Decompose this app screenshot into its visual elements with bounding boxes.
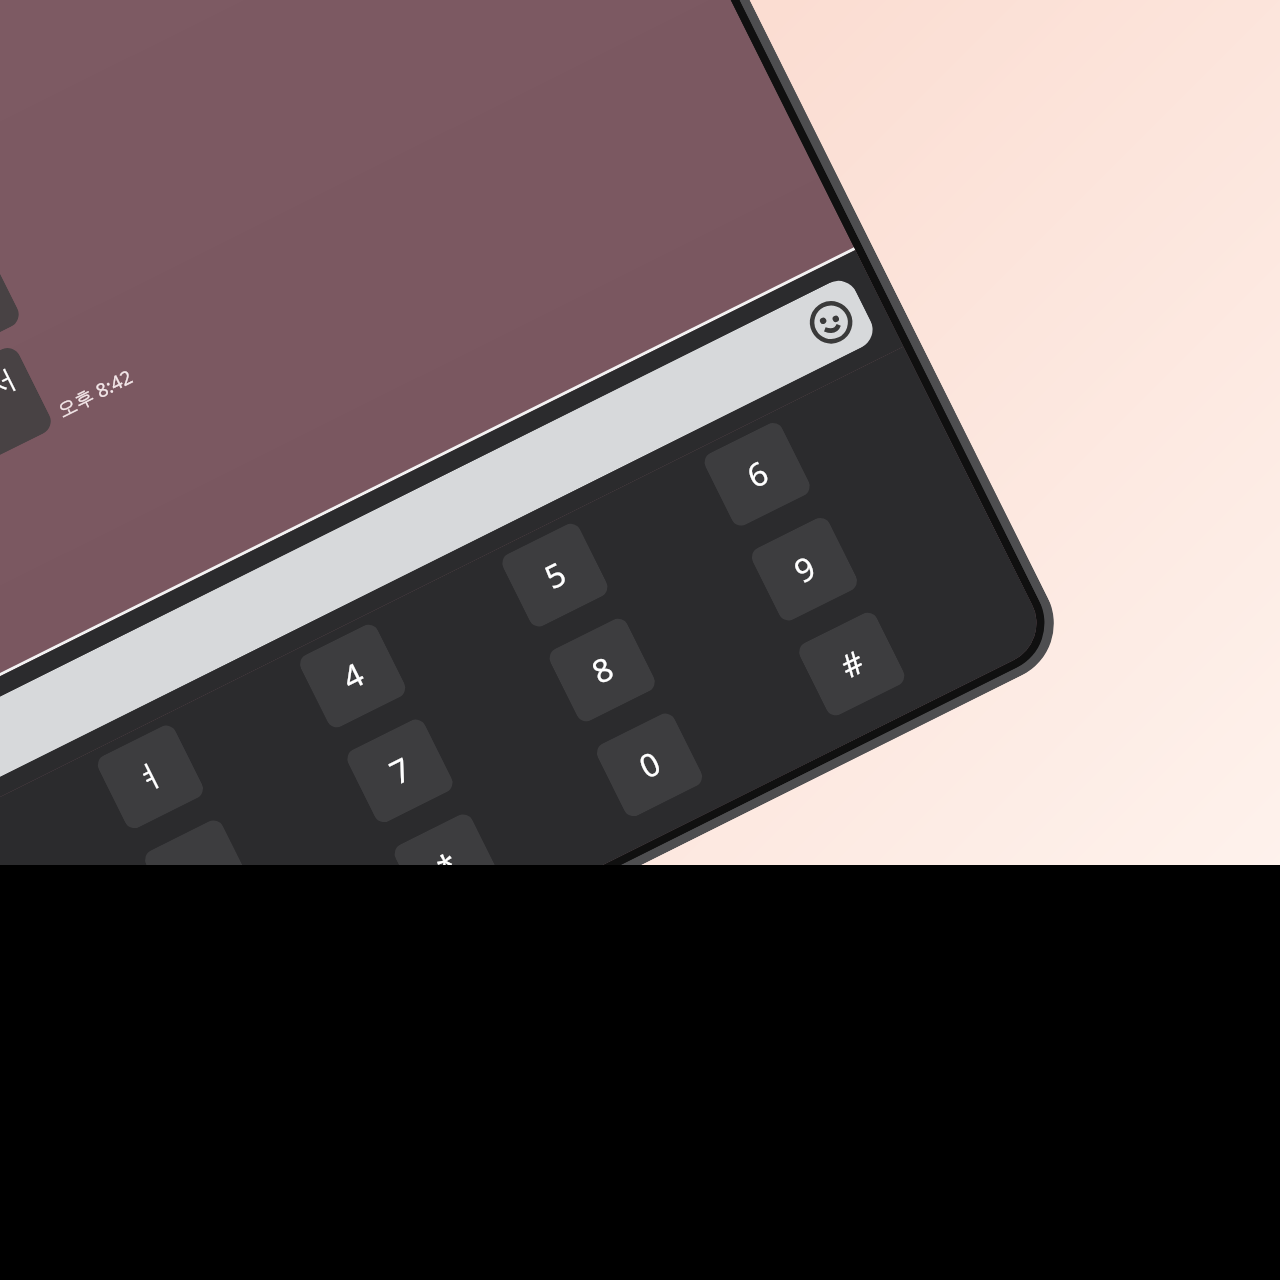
button[interactable]: 0 bbox=[593, 710, 706, 820]
button[interactable]: 4 bbox=[296, 621, 409, 731]
button[interactable]: ㅕ bbox=[94, 722, 207, 832]
button[interactable]: 6 bbox=[701, 419, 813, 529]
button[interactable]: 9 bbox=[748, 514, 861, 624]
staticText: 7 bbox=[382, 747, 419, 795]
button[interactable]: Emoji bbox=[0, 274, 879, 802]
button[interactable]: 5 bbox=[499, 520, 611, 630]
staticText: 4 bbox=[335, 652, 371, 700]
staticText: 도배우한테 미안해서 bbox=[0, 358, 22, 504]
staticText: 오후 8:42 bbox=[53, 363, 137, 423]
staticText: 8 bbox=[584, 646, 621, 694]
staticText: * bbox=[429, 842, 465, 889]
staticText: 0 bbox=[632, 741, 668, 789]
staticText: ㅜ bbox=[174, 847, 221, 897]
staticText: 6 bbox=[739, 450, 776, 498]
button[interactable]: ㅑ bbox=[0, 823, 4, 933]
button[interactable]: 도배우 촬영 중 다친 bbox=[0, 170, 23, 439]
staticText: 9 bbox=[787, 545, 823, 593]
button[interactable]: ㅜ bbox=[141, 817, 254, 927]
staticText: # bbox=[833, 639, 871, 688]
button[interactable]: # bbox=[795, 609, 908, 719]
button[interactable]: 도배우한테 미안해서 bbox=[0, 343, 56, 552]
staticText: 5 bbox=[537, 551, 574, 599]
staticText: ㅕ bbox=[127, 752, 174, 802]
button[interactable]: 8 bbox=[546, 615, 659, 725]
button[interactable]: Emoji bbox=[802, 293, 861, 352]
button[interactable]: * bbox=[391, 811, 504, 921]
button[interactable]: 7 bbox=[344, 716, 456, 826]
